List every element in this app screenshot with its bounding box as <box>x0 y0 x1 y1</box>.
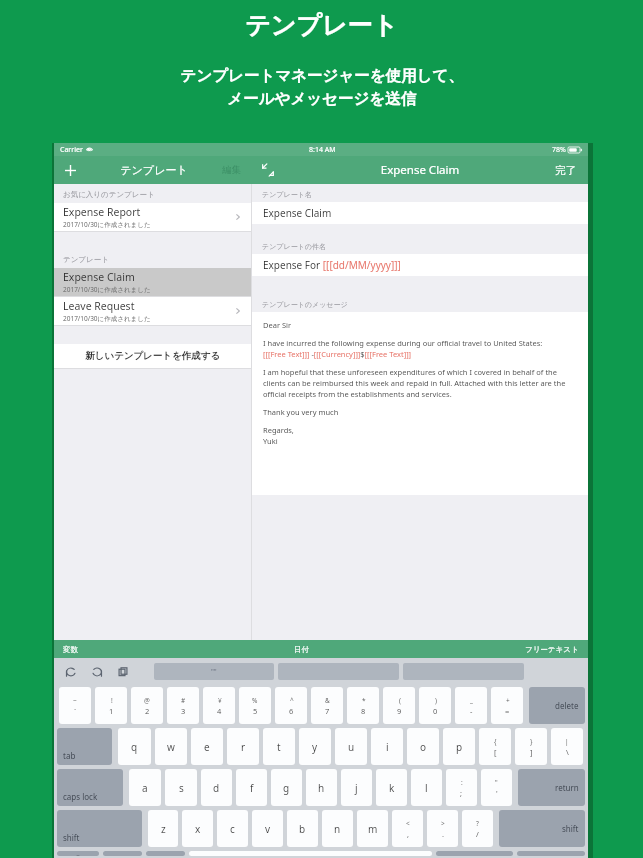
button[interactable]: i <box>371 728 403 765</box>
button[interactable]: Add template <box>54 156 86 184</box>
staticText: " <box>495 778 498 787</box>
button[interactable]: t <box>263 728 295 765</box>
button[interactable]: Expense Claim <box>54 268 251 296</box>
button[interactable]: a <box>129 769 161 806</box>
button[interactable]: e <box>191 728 223 765</box>
staticText: + <box>506 696 510 705</box>
button[interactable]: Undo <box>58 659 84 685</box>
staticText: 完了 <box>555 164 576 177</box>
button[interactable]: Expense Report <box>54 203 251 231</box>
button[interactable]: ? <box>462 810 493 847</box>
staticText: Expense Claim <box>285 162 555 178</box>
button[interactable]: g <box>271 769 302 806</box>
staticText: { <box>494 737 497 746</box>
button[interactable]: Expand <box>251 156 285 184</box>
button[interactable]: & <box>311 687 343 724</box>
button[interactable]: Expense Claim <box>252 202 588 224</box>
button[interactable]: _ <box>455 687 487 724</box>
button[interactable]: ) <box>419 687 451 724</box>
button[interactable]: Dictate <box>146 851 185 856</box>
button[interactable]: 変数 <box>63 640 78 658</box>
button[interactable]: ¥ <box>203 687 235 724</box>
button[interactable]: y <box>299 728 331 765</box>
staticText: 新しいテンプレートを作成する <box>85 350 221 362</box>
button[interactable]: p <box>443 728 475 765</box>
staticText: ] <box>530 747 533 757</box>
button[interactable]: } <box>515 728 547 765</box>
button[interactable]: > <box>427 810 458 847</box>
staticText: caps lock <box>63 791 98 802</box>
button[interactable]: .?123 <box>436 851 513 856</box>
staticText: テンプレートマネージャーを使用して、 <box>180 66 464 86</box>
button[interactable]: Redo <box>84 659 110 685</box>
button[interactable]: c <box>217 810 248 847</box>
button[interactable]: f <box>236 769 267 806</box>
button[interactable]: * <box>347 687 379 724</box>
button[interactable]: : <box>446 769 477 806</box>
button[interactable]: q <box>118 728 151 765</box>
staticText: o <box>420 740 427 754</box>
button[interactable]: n <box>322 810 353 847</box>
button[interactable]: % <box>239 687 271 724</box>
button[interactable]: x <box>182 810 213 847</box>
button[interactable]: d <box>201 769 232 806</box>
button[interactable]: ( <box>383 687 415 724</box>
button[interactable]: shift <box>499 810 585 847</box>
button[interactable]: j <box>341 769 372 806</box>
staticText: テンプレート名 <box>262 190 312 199</box>
staticText: 日付 <box>294 645 309 654</box>
button[interactable]: Dear Sir <box>252 312 588 495</box>
button[interactable]: v <box>252 810 283 847</box>
button[interactable]: Emoji <box>57 851 99 856</box>
button[interactable]: { <box>479 728 511 765</box>
button[interactable]: shift <box>57 810 142 847</box>
button[interactable]: b <box>287 810 318 847</box>
button[interactable]: w <box>155 728 187 765</box>
button[interactable]: 完了 <box>555 156 576 184</box>
staticText: "" <box>211 667 217 677</box>
button[interactable]: + <box>491 687 523 724</box>
button[interactable]: Leave Request <box>54 297 251 325</box>
button[interactable]: r <box>227 728 259 765</box>
staticText: & <box>325 696 330 705</box>
staticText: : <box>461 778 463 787</box>
staticText: 2017/10/30に作成されました <box>63 314 151 323</box>
button[interactable]: k <box>376 769 407 806</box>
button[interactable]: m <box>357 810 388 847</box>
staticText: q <box>131 740 138 754</box>
staticText: 変数 <box>63 645 78 654</box>
staticText: v <box>265 822 271 836</box>
button[interactable]: .?123 <box>103 851 142 856</box>
button[interactable]: @ <box>131 687 163 724</box>
button[interactable]: Hide keyboard <box>517 851 585 856</box>
button[interactable]: 新しいテンプレートを作成する <box>54 344 251 368</box>
button[interactable]: s <box>165 769 197 806</box>
button[interactable]: " <box>481 769 512 806</box>
button[interactable]: ^ <box>275 687 307 724</box>
button[interactable]: 日付 <box>78 640 525 658</box>
button[interactable]: delete <box>529 687 585 724</box>
button[interactable]: Paste <box>110 659 136 685</box>
button[interactable]: z <box>148 810 178 847</box>
button[interactable]: h <box>306 769 337 806</box>
button[interactable]: o <box>407 728 439 765</box>
button[interactable]: ~ <box>59 687 91 724</box>
button[interactable]: < <box>392 810 423 847</box>
button[interactable]: l <box>411 769 442 806</box>
staticText: 78% <box>552 145 566 155</box>
button[interactable]: フリーテキスト <box>525 640 579 658</box>
button[interactable]: 編集 <box>222 156 241 184</box>
button[interactable]: u <box>335 728 367 765</box>
button[interactable]: Expense For [[[dd/MM/yyyy]]] <box>252 254 588 276</box>
button[interactable]: return <box>518 769 585 806</box>
button[interactable]: tab <box>57 728 112 765</box>
button[interactable]: ! <box>95 687 127 724</box>
button[interactable]: | <box>551 728 583 765</box>
staticText: # <box>181 696 186 705</box>
button[interactable]: caps lock <box>57 769 123 806</box>
button[interactable]: # <box>167 687 199 724</box>
